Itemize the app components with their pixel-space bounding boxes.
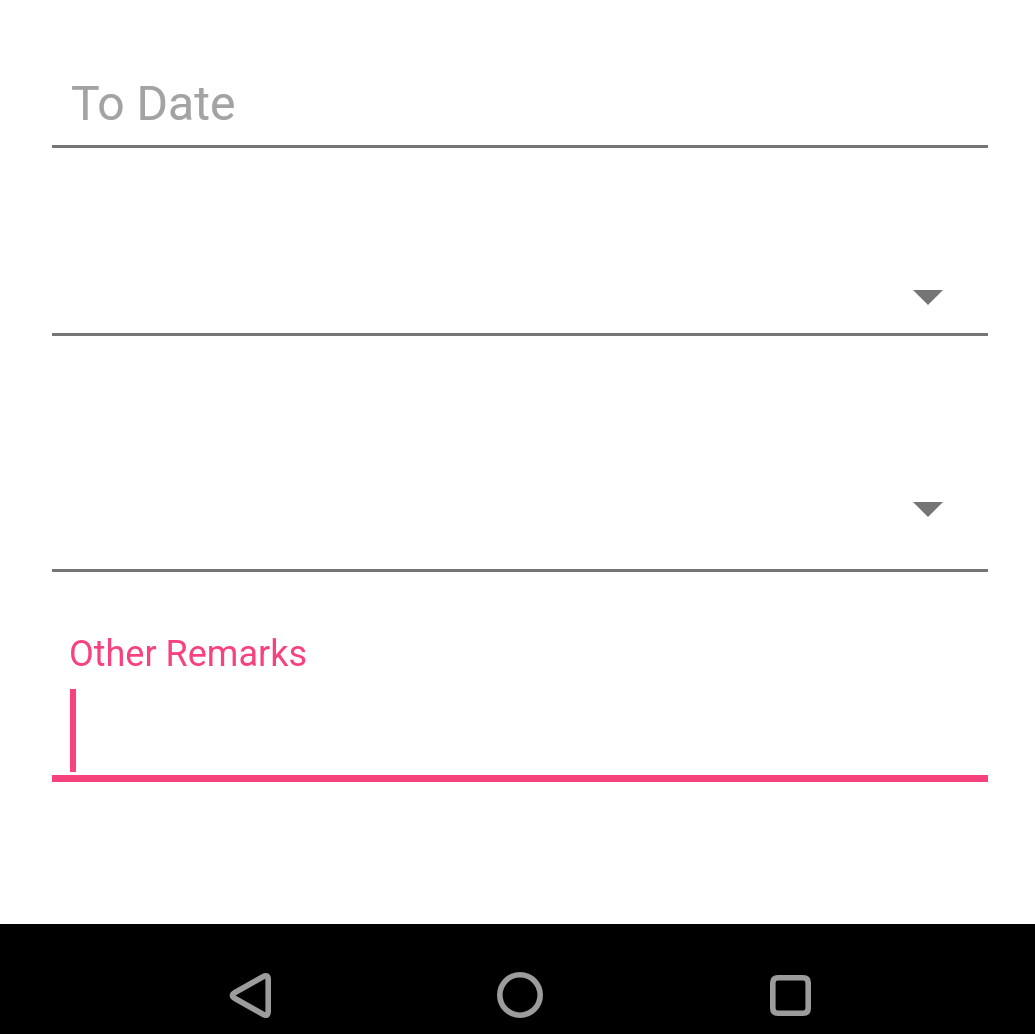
button[interactable]: Open dropdown xyxy=(52,336,988,572)
button[interactable]: Other Remarks xyxy=(52,572,988,782)
button[interactable]: Open dropdown xyxy=(52,148,988,336)
button[interactable]: Home xyxy=(464,940,576,1034)
button[interactable]: To Date xyxy=(52,20,988,148)
button[interactable]: Recent apps xyxy=(734,940,846,1034)
staticText: To Date xyxy=(71,75,236,131)
button[interactable]: Back xyxy=(192,940,304,1034)
staticText: Other Remarks xyxy=(69,633,308,675)
